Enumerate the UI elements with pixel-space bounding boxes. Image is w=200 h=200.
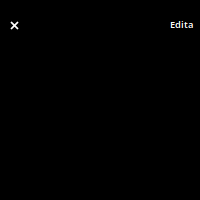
staticText: Edita xyxy=(170,18,193,31)
button[interactable]: Edita xyxy=(166,15,197,36)
button[interactable]: Chiudi xyxy=(5,16,24,35)
